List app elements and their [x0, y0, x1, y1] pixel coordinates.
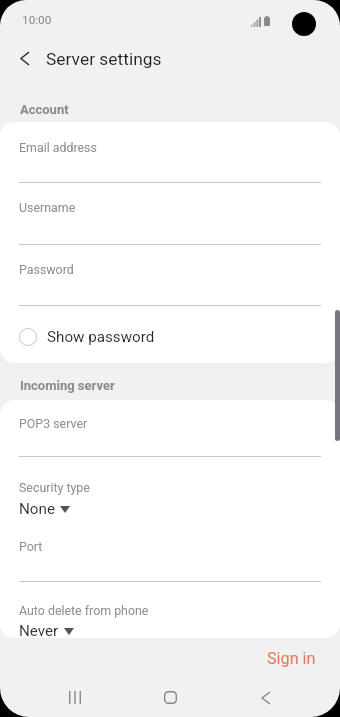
staticText: Auto delete from phone: [19, 603, 149, 618]
staticText: Username: [19, 200, 76, 215]
staticText: Password: [19, 262, 74, 277]
staticText: 10:00: [22, 13, 52, 27]
button[interactable]: Security type: [0, 457, 340, 539]
staticText: None: [19, 500, 55, 518]
staticText: POP3 server: [19, 416, 88, 431]
button[interactable]: Show password: [0, 309, 340, 363]
button[interactable]: Port: [0, 539, 340, 582]
other: Battery: [264, 16, 270, 26]
button[interactable]: Password: [0, 245, 340, 306]
staticText: Account: [20, 102, 69, 117]
staticText: Sign in: [267, 649, 316, 668]
button[interactable]: POP3 server: [0, 400, 340, 457]
button[interactable]: Back: [240, 678, 292, 717]
staticText: Port: [19, 539, 43, 554]
button[interactable]: Home: [144, 678, 196, 717]
staticText: Never: [19, 622, 59, 638]
button[interactable]: Navigate up: [6, 40, 43, 77]
staticText: Show password: [47, 328, 155, 346]
staticText: Security type: [19, 480, 90, 495]
staticText: Email address: [19, 140, 97, 155]
button[interactable]: Username: [0, 183, 340, 245]
other: Mobile signal: [251, 17, 261, 27]
staticText: Incoming server: [20, 378, 115, 393]
button[interactable]: Auto delete from phone: [0, 582, 340, 638]
button[interactable]: Sign in: [255, 641, 328, 676]
staticText: Server settings: [46, 49, 162, 69]
button[interactable]: Email address: [0, 122, 340, 183]
button[interactable]: Recent apps: [49, 678, 101, 717]
